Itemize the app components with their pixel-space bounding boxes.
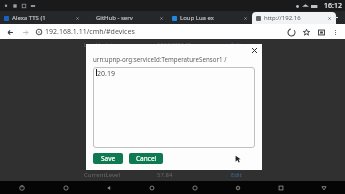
button[interactable]: Back — [87, 181, 130, 194]
button[interactable]: Cancel — [129, 153, 163, 164]
button[interactable]: Close — [250, 46, 258, 54]
button[interactable]: 20.19 — [93, 67, 255, 148]
staticText: LastUpdate — [84, 41, 157, 49]
button[interactable]: Close tab — [327, 16, 332, 21]
button[interactable]: Close tab — [75, 16, 80, 21]
button[interactable]: Close tab — [159, 16, 164, 21]
button[interactable]: http://192.16 — [252, 12, 336, 24]
staticText: 192.168.1.11/cmh/#devices — [45, 27, 286, 37]
staticText: Alexa TTS (1 — [12, 14, 73, 22]
button[interactable]: Settings — [216, 181, 259, 194]
button[interactable]: Save — [93, 153, 123, 164]
staticText: 20.19 — [97, 69, 115, 79]
button[interactable]: Down — [302, 181, 345, 194]
button[interactable]: Back — [5, 27, 15, 37]
button[interactable]: Edit — [231, 171, 285, 179]
staticText: urn:upnp-org:serviceId:TemperatureSensor… — [93, 55, 257, 63]
staticText: 16:12 — [324, 1, 342, 11]
staticText: Save — [101, 154, 116, 163]
button[interactable]: Reload — [286, 27, 296, 37]
button[interactable]: More options — [330, 27, 340, 37]
button[interactable]: Cast — [316, 27, 326, 37]
button[interactable]: Edit — [231, 41, 285, 49]
staticText: Loup Lua ex — [180, 14, 241, 22]
staticText: GitHub - serv — [96, 14, 157, 22]
button[interactable]: Forward — [20, 27, 30, 37]
button[interactable]: Brightness — [44, 181, 87, 194]
button[interactable]: Apps — [259, 181, 302, 194]
button[interactable]: Loup Lua ex — [168, 12, 252, 24]
staticText: 57.84 — [157, 171, 231, 179]
staticText: Cancel — [136, 154, 157, 163]
button[interactable]: Close tab — [243, 16, 248, 21]
button[interactable]: Power — [0, 181, 44, 194]
staticText: CurrentLevel — [84, 171, 157, 179]
button[interactable]: Alexa TTS (1 — [0, 12, 84, 24]
button[interactable]: New tab — [331, 13, 340, 22]
button[interactable]: Home — [130, 181, 173, 194]
staticText: 1562273145 — [157, 41, 231, 49]
button[interactable]: GitHub - serv — [84, 12, 168, 24]
button[interactable]: Recents — [173, 181, 216, 194]
button[interactable]: Bookmark — [301, 27, 311, 37]
staticText: http://192.16 — [264, 14, 325, 22]
